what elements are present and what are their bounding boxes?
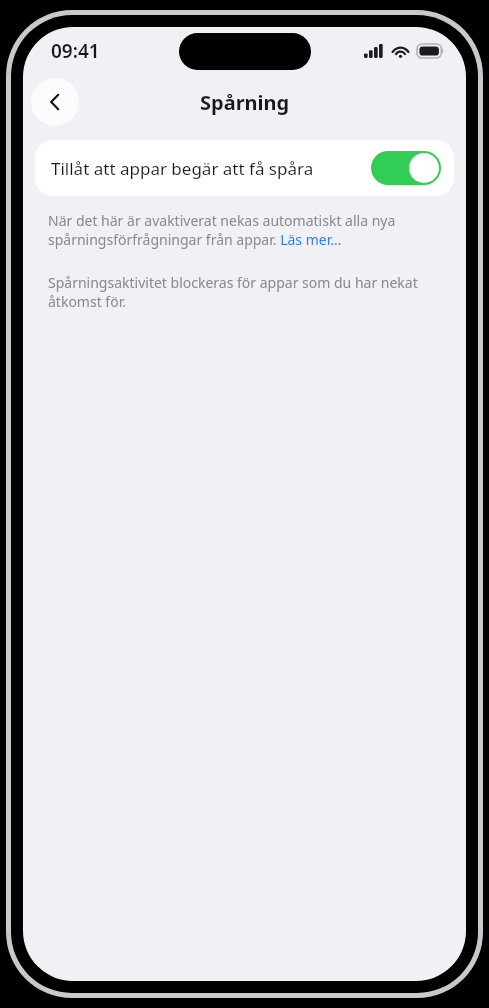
button[interactable]: Tillåt att appar begär att få spåra — [35, 140, 454, 196]
staticText: Spårningsaktivitet blockeras för appar s… — [48, 273, 446, 311]
staticText: 09:41 — [51, 38, 100, 64]
button[interactable]: Växla spårning — [371, 151, 441, 185]
staticText: När det här är avaktiverat nekas automat… — [48, 211, 446, 249]
staticText: Tillåt att appar begär att få spåra — [51, 157, 365, 180]
button[interactable]: Tillbaka — [31, 78, 79, 126]
staticText: Spårning — [200, 89, 290, 116]
